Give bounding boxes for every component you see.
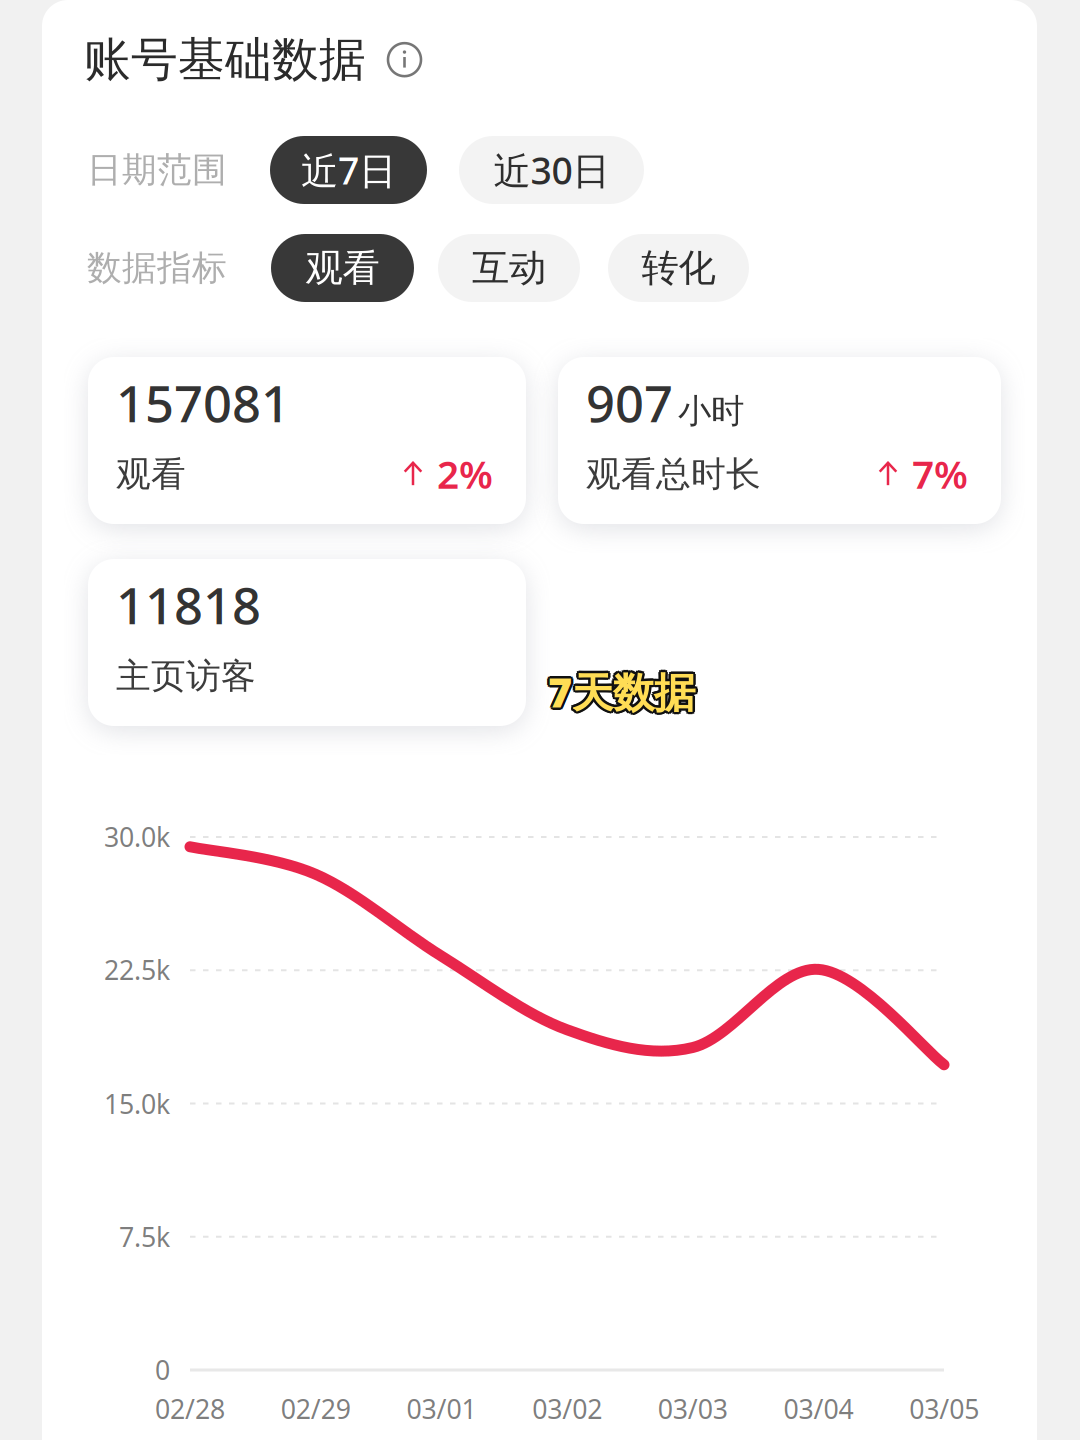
staticText: 日期范围 (87, 149, 227, 191)
staticText: 7天数据 (550, 662, 697, 717)
button[interactable]: Info (388, 43, 421, 76)
staticText: 7% (912, 448, 968, 499)
staticText: 小时 (678, 391, 744, 432)
button[interactable]: 观看 (271, 234, 414, 302)
staticText: 7天数据 (550, 666, 697, 721)
staticText: 7天数据 (546, 662, 693, 717)
staticText: 账号基础数据 (84, 31, 366, 88)
staticText: 03/05 (909, 1391, 979, 1426)
staticText: 11818 (116, 571, 261, 638)
button[interactable]: 转化 (608, 234, 749, 302)
button[interactable]: 互动 (438, 234, 580, 302)
staticText: 15.0k (104, 1086, 170, 1121)
staticText: 7天数据 (548, 662, 695, 716)
staticText: 03/01 (406, 1391, 476, 1426)
staticText: 02/28 (155, 1391, 225, 1426)
staticText: 观看总时长 (586, 453, 761, 496)
staticText: 30.0k (104, 819, 170, 854)
staticText: 7天数据 (548, 666, 695, 721)
staticText: 7.5k (119, 1219, 170, 1254)
staticText: 03/03 (658, 1391, 728, 1426)
button[interactable]: 近30日 (459, 136, 644, 204)
staticText: 22.5k (104, 952, 170, 987)
staticText: 02/29 (281, 1391, 351, 1426)
staticText: 互动 (472, 245, 546, 291)
staticText: 03/02 (532, 1391, 602, 1426)
staticText: 03/04 (784, 1391, 854, 1426)
staticText: 转化 (641, 245, 715, 291)
staticText: 近7日 (301, 145, 396, 195)
staticText: 907 (586, 369, 673, 436)
button[interactable]: 近7日 (270, 136, 427, 204)
staticText: 2% (437, 448, 493, 499)
staticText: 7天数据 (546, 664, 693, 719)
staticText: 157081 (116, 369, 290, 436)
staticText: 观看 (305, 245, 379, 291)
staticText: 7天数据 (546, 666, 693, 721)
staticText: 数据指标 (87, 247, 227, 289)
staticText: 主页访客 (116, 655, 256, 698)
staticText: 7天数据 (548, 664, 695, 719)
staticText: 7天数据 (550, 664, 697, 719)
staticText: 0 (155, 1352, 170, 1387)
staticText: 近30日 (493, 145, 609, 195)
staticText: 观看 (116, 453, 186, 496)
